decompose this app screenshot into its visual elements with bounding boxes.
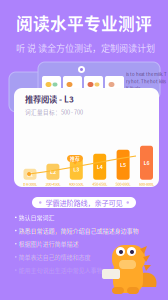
staticText: 学霸进阶路线，亲子可见 [45,197,122,208]
staticText: 500-690L [116,181,131,187]
staticText: 450-650L [92,181,107,187]
staticText: is to heat the milk. T [126,71,167,77]
staticText: 推荐 [70,155,80,162]
staticText: 400-550L [69,181,84,187]
staticText: L5 [120,161,126,168]
staticText: 熟悉日常话题，简短介绍自己或描述身边事物 [19,226,139,235]
staticText: 词汇量目标：500 - 700 [25,108,83,116]
staticText: 阅读水平专业测评 [16,11,152,35]
staticText: L2 [50,168,56,175]
staticText: L4 [97,163,103,170]
staticText: L3 [73,165,79,173]
staticText: 能用主句说出生活中常见人事物 [19,266,103,274]
staticText: BR-300L [23,181,37,187]
staticText: 听 说 读全方位测试，定制阅读计划 [16,41,155,54]
staticText: 推荐阅读 - L3 [25,93,74,105]
staticText: Y. Yuck! [126,85,140,92]
staticText: 熟认日常词汇 [19,213,55,222]
staticText: 600-800L [139,181,154,187]
staticText: L1 [27,170,33,178]
button[interactable]: 学霸进阶路线，亲子可见 [32,197,136,208]
staticText: 简单表达自己的情绪和态度 [19,253,91,261]
staticText: ry hot. The hot kills [126,78,166,84]
staticText: 200-450L [45,181,60,187]
staticText: L6 [143,159,149,166]
staticText: 根据图片进行简单描述 [19,239,79,248]
